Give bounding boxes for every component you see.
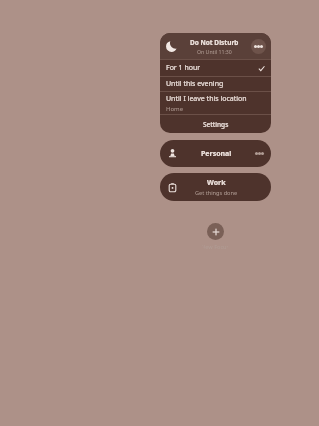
- staticText: Until I leave this location: [166, 94, 247, 104]
- staticText: For 1 hour: [166, 63, 201, 73]
- staticText: Until this evening: [166, 79, 224, 89]
- button[interactable]: Personal: [160, 140, 271, 167]
- button[interactable]: More options: [251, 39, 266, 54]
- staticText: Home: [166, 105, 184, 113]
- staticText: On Until 11:30: [197, 48, 232, 55]
- button[interactable]: Work: [160, 173, 271, 201]
- button[interactable]: Settings: [160, 115, 271, 133]
- staticText: Do Not Disturb: [190, 38, 239, 47]
- staticText: Work: [207, 178, 226, 188]
- staticText: Get things done: [195, 189, 238, 197]
- button[interactable]: New Focus: [201, 223, 230, 251]
- button[interactable]: Until this evening: [160, 77, 271, 91]
- button[interactable]: For 1 hour: [160, 60, 271, 76]
- button[interactable]: Do Not Disturb: [160, 33, 271, 59]
- button[interactable]: Until I leave this location: [160, 92, 271, 114]
- staticText: Personal: [201, 149, 232, 159]
- staticText: Settings: [203, 120, 229, 129]
